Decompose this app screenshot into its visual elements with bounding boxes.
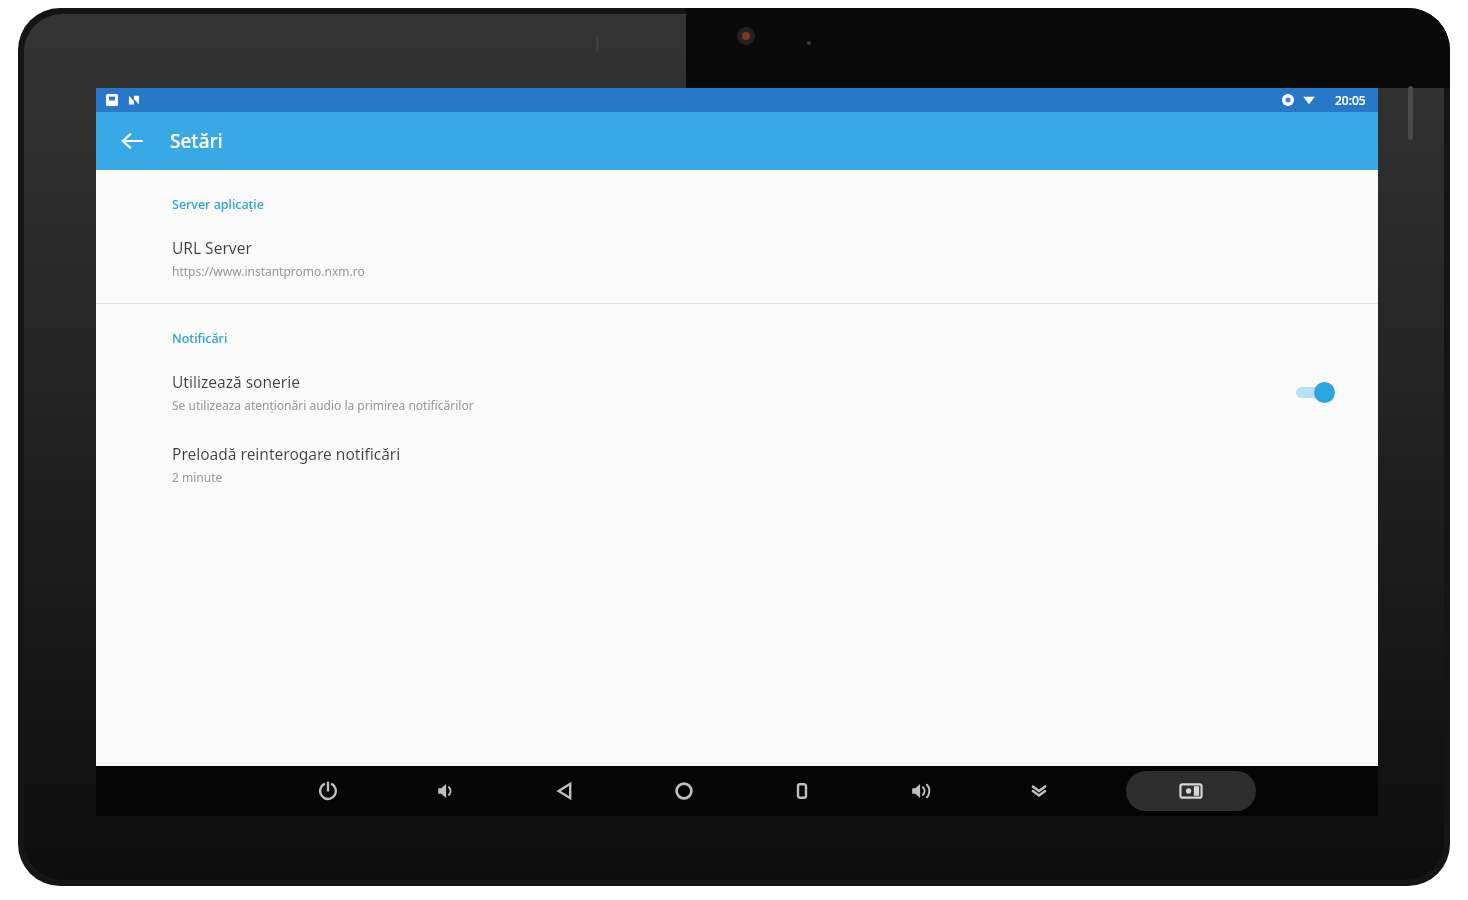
staticText: Utilizează sonerie (172, 371, 300, 392)
button[interactable]: Utilizează sonerie toggle (1292, 375, 1344, 409)
button[interactable]: URL Server (96, 235, 1378, 281)
staticText: https://www.instantpromo.nxm.ro (172, 263, 365, 279)
staticText: Preloadă reinterogare notificări (172, 443, 401, 464)
staticText: URL Server (172, 237, 252, 258)
staticText: 2 minute (172, 469, 223, 485)
button[interactable]: Back (108, 117, 156, 165)
button[interactable]: Utilizează sonerie (96, 369, 1378, 415)
staticText: Server aplicație (172, 196, 264, 213)
staticText: 20:05 (1335, 92, 1366, 108)
staticText: Setări (170, 128, 223, 154)
button[interactable]: Home (652, 766, 716, 816)
button[interactable]: Back (533, 766, 597, 816)
button[interactable]: Recents (770, 766, 834, 816)
button[interactable]: Preloadă reinterogare notificări (96, 441, 1378, 487)
button[interactable]: Volume up (889, 766, 953, 816)
staticText: Notificări (172, 330, 228, 347)
button[interactable]: Collapse (1007, 766, 1071, 816)
button[interactable]: Power (296, 766, 360, 816)
staticText: Se utilizeaza atenționări audio la primi… (172, 397, 474, 413)
button[interactable]: Screenshot (1126, 771, 1256, 811)
button[interactable]: Volume down (415, 766, 479, 816)
